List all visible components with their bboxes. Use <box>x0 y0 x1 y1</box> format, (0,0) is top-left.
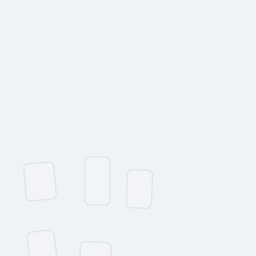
button[interactable]: Card 5 <box>80 242 111 256</box>
button[interactable]: Card 4 <box>29 231 56 256</box>
button[interactable]: Card 3 <box>127 170 152 208</box>
button[interactable]: Card 1 <box>25 163 55 200</box>
button[interactable]: Card 2 <box>85 157 110 205</box>
